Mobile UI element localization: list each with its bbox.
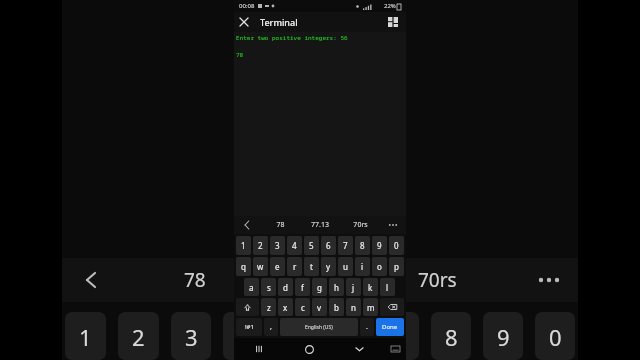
staticText: a bbox=[249, 282, 254, 293]
button[interactable]: 5 bbox=[304, 236, 319, 255]
staticText: n bbox=[351, 302, 356, 313]
button[interactable]: 9 bbox=[372, 236, 387, 255]
staticText: u bbox=[343, 261, 348, 272]
button[interactable]: 0 bbox=[389, 236, 404, 255]
staticText: 9 bbox=[377, 240, 382, 251]
staticText: 00:08 bbox=[239, 2, 255, 10]
button[interactable]: 7 bbox=[338, 236, 353, 255]
staticText: . bbox=[366, 322, 368, 332]
button[interactable]: o bbox=[372, 257, 387, 276]
button[interactable]: t bbox=[304, 257, 319, 276]
button[interactable]: 3 bbox=[270, 236, 285, 255]
button[interactable]: Backspace bbox=[380, 298, 404, 316]
button[interactable]: w bbox=[253, 257, 268, 276]
staticText: 8 bbox=[445, 322, 458, 352]
button[interactable]: y bbox=[321, 257, 336, 276]
staticText: k bbox=[368, 282, 373, 293]
button[interactable]: 8 bbox=[355, 236, 370, 255]
staticText: 1 bbox=[241, 240, 246, 251]
staticText: s bbox=[267, 282, 271, 293]
button[interactable]: 77.13 bbox=[300, 216, 340, 234]
staticText: 78 bbox=[184, 267, 206, 293]
staticText: 8 bbox=[360, 240, 365, 251]
button[interactable]: 70rs bbox=[340, 216, 380, 234]
button[interactable]: q bbox=[236, 257, 251, 276]
button[interactable]: 1 bbox=[236, 236, 251, 255]
staticText: j bbox=[352, 282, 355, 293]
staticText: Enter two positive integers: 56 bbox=[236, 34, 348, 42]
staticText: 2 bbox=[258, 240, 263, 251]
button[interactable]: i bbox=[355, 257, 370, 276]
staticText: g bbox=[317, 282, 322, 293]
button[interactable]: x bbox=[278, 298, 293, 316]
staticText: h bbox=[334, 282, 339, 293]
button[interactable]: r bbox=[287, 257, 302, 276]
button[interactable]: Recents bbox=[234, 338, 284, 360]
button[interactable]: Close bbox=[234, 12, 254, 32]
button[interactable]: h bbox=[329, 278, 344, 296]
button[interactable]: Done bbox=[376, 318, 404, 336]
button[interactable]: g bbox=[312, 278, 327, 296]
button[interactable]: English (US) bbox=[280, 318, 358, 336]
button[interactable]: z bbox=[261, 298, 276, 316]
staticText: i bbox=[361, 261, 364, 272]
button[interactable]: . bbox=[360, 318, 374, 336]
button[interactable]: 78 bbox=[260, 216, 300, 234]
staticText: 6 bbox=[326, 240, 331, 251]
staticText: y bbox=[326, 261, 331, 272]
staticText: x bbox=[283, 302, 288, 313]
staticText: c bbox=[301, 302, 305, 313]
button[interactable]: Keyboard layout bbox=[384, 338, 406, 360]
button[interactable]: b bbox=[329, 298, 344, 316]
button[interactable]: u bbox=[338, 257, 353, 276]
staticText: e bbox=[275, 261, 280, 272]
button[interactable]: l bbox=[380, 278, 395, 296]
button[interactable]: Sessions bbox=[383, 12, 403, 32]
staticText: 4 bbox=[292, 240, 297, 251]
button[interactable]: c bbox=[295, 298, 310, 316]
staticText: 3 bbox=[275, 240, 280, 251]
button[interactable]: e bbox=[270, 257, 285, 276]
button[interactable]: 4 bbox=[287, 236, 302, 255]
button[interactable]: , bbox=[264, 318, 278, 336]
staticText: z bbox=[267, 302, 271, 313]
button[interactable]: k bbox=[363, 278, 378, 296]
staticText: m bbox=[367, 302, 375, 313]
staticText: d bbox=[283, 282, 288, 293]
button[interactable]: Hide keyboard bbox=[334, 338, 384, 360]
staticText: t bbox=[310, 261, 313, 272]
staticText: p bbox=[394, 261, 399, 272]
button[interactable]: Previous suggestions bbox=[234, 216, 260, 234]
button[interactable]: f bbox=[295, 278, 310, 296]
button[interactable]: !#1 bbox=[236, 318, 262, 336]
button[interactable]: a bbox=[244, 278, 259, 296]
staticText: 77.13 bbox=[287, 267, 336, 293]
button[interactable]: n bbox=[346, 298, 361, 316]
staticText: v bbox=[317, 302, 322, 313]
staticText: 2 bbox=[132, 322, 145, 352]
button[interactable]: d bbox=[278, 278, 293, 296]
button[interactable]: 6 bbox=[321, 236, 336, 255]
staticText: 77.13 bbox=[311, 220, 329, 230]
staticText: 4 bbox=[237, 322, 250, 352]
staticText: 78 bbox=[236, 51, 244, 59]
staticText: 70rs bbox=[418, 267, 457, 293]
button[interactable]: 2 bbox=[253, 236, 268, 255]
button[interactable]: j bbox=[346, 278, 361, 296]
staticText: !#1 bbox=[245, 323, 254, 331]
button[interactable]: p bbox=[389, 257, 404, 276]
button[interactable]: Shift bbox=[236, 298, 259, 316]
button[interactable]: m bbox=[363, 298, 378, 316]
staticText: l bbox=[386, 282, 389, 293]
button[interactable]: Home bbox=[284, 338, 334, 360]
staticText: 1 bbox=[79, 322, 92, 352]
staticText: b bbox=[334, 302, 339, 313]
button[interactable]: s bbox=[261, 278, 276, 296]
staticText: w bbox=[257, 261, 264, 272]
button[interactable]: v bbox=[312, 298, 327, 316]
staticText: 78 bbox=[276, 220, 285, 230]
staticText: 6 bbox=[341, 322, 354, 352]
staticText: 5 bbox=[309, 240, 314, 251]
staticText: 0 bbox=[549, 322, 562, 352]
button[interactable]: More options bbox=[380, 216, 406, 234]
